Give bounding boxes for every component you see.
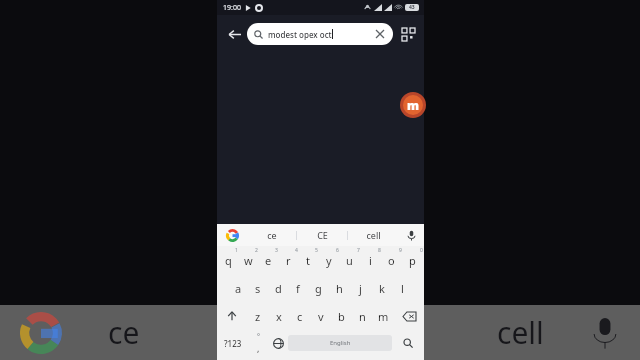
staticText: 2 (255, 247, 258, 254)
staticText: 19:00 (223, 3, 241, 13)
staticText: i (369, 253, 372, 268)
staticText: y (326, 253, 332, 268)
staticText: cell (366, 229, 381, 241)
staticText: 7 (357, 247, 360, 254)
button[interactable]: w (238, 246, 258, 274)
button[interactable]: Google Lens (396, 22, 420, 46)
staticText: h (336, 281, 343, 296)
staticText: c (297, 309, 303, 324)
staticText: 5 (315, 247, 318, 254)
button[interactable]: z (247, 302, 268, 330)
button[interactable]: i (360, 246, 381, 274)
staticText: f (296, 281, 300, 296)
button[interactable]: p (402, 246, 423, 274)
staticText: 43 (409, 4, 415, 11)
staticText: p (409, 253, 416, 268)
button[interactable]: y (318, 246, 339, 274)
staticText: l (401, 281, 404, 296)
staticText: z (255, 309, 261, 324)
button[interactable]: m (373, 302, 394, 330)
staticText: t (306, 253, 310, 268)
staticText: 8 (378, 247, 381, 254)
button[interactable]: ?123 (217, 330, 248, 356)
button[interactable]: Back (221, 21, 247, 47)
staticText: r (286, 253, 291, 268)
staticText: g (315, 281, 322, 296)
button[interactable]: h (329, 274, 350, 302)
staticText: , (257, 342, 260, 354)
button[interactable]: Mobizen recorder (400, 92, 426, 118)
staticText: 9 (399, 247, 402, 254)
staticText: q (225, 253, 232, 268)
button[interactable]: v (310, 302, 331, 330)
button[interactable]: CE (297, 224, 347, 246)
button[interactable]: ° (248, 330, 268, 356)
staticText: 3 (275, 247, 278, 254)
staticText: ce (108, 312, 140, 353)
staticText: d (275, 281, 282, 296)
staticText: b (338, 309, 345, 324)
staticText: English (330, 339, 351, 347)
button[interactable]: c (289, 302, 310, 330)
button[interactable]: Google (217, 224, 247, 246)
staticText: modest opex oct (268, 29, 332, 40)
staticText: o (388, 253, 395, 268)
staticText: s (255, 281, 261, 296)
button[interactable]: k (371, 274, 392, 302)
staticText: w (244, 253, 253, 268)
button[interactable]: o (381, 246, 402, 274)
button[interactable]: cell (348, 224, 398, 246)
button[interactable]: Voice input (398, 224, 424, 246)
staticText: m (407, 97, 420, 113)
staticText: j (359, 281, 362, 296)
button[interactable]: s (248, 274, 268, 302)
staticText: cell (497, 312, 544, 353)
button[interactable]: l (392, 274, 413, 302)
button[interactable]: Shift (217, 302, 247, 330)
button[interactable]: x (268, 302, 289, 330)
staticText: x (276, 309, 282, 324)
staticText: v (318, 309, 324, 324)
staticText: CE (317, 229, 328, 241)
button[interactable]: j (350, 274, 371, 302)
button[interactable]: Space (288, 335, 392, 351)
button[interactable]: q (218, 246, 238, 274)
button[interactable]: Backspace (394, 302, 424, 330)
button[interactable]: b (331, 302, 352, 330)
button[interactable]: ce (247, 224, 296, 246)
staticText: 0 (420, 247, 423, 254)
staticText: 4 (295, 247, 298, 254)
staticText: k (379, 281, 385, 296)
staticText: e (265, 253, 272, 268)
staticText: ° (257, 332, 260, 342)
staticText: ?123 (224, 338, 242, 349)
staticText: m (378, 309, 389, 324)
staticText: ce (267, 229, 277, 241)
button[interactable]: a (228, 274, 248, 302)
button[interactable]: Change language (268, 330, 288, 356)
button[interactable]: n (352, 302, 373, 330)
staticText: n (359, 309, 366, 324)
button[interactable]: f (288, 274, 308, 302)
staticText: u (346, 253, 353, 268)
button[interactable]: e (258, 246, 278, 274)
button[interactable]: modest opex oct (247, 23, 393, 45)
button[interactable]: d (268, 274, 288, 302)
button[interactable]: Clear (374, 28, 386, 40)
button[interactable]: g (308, 274, 329, 302)
button[interactable]: u (339, 246, 360, 274)
staticText: a (235, 281, 242, 296)
button[interactable]: Search (392, 330, 424, 356)
button[interactable]: t (298, 246, 318, 274)
staticText: 6 (336, 247, 339, 254)
staticText: 1 (235, 247, 238, 254)
button[interactable]: r (278, 246, 298, 274)
